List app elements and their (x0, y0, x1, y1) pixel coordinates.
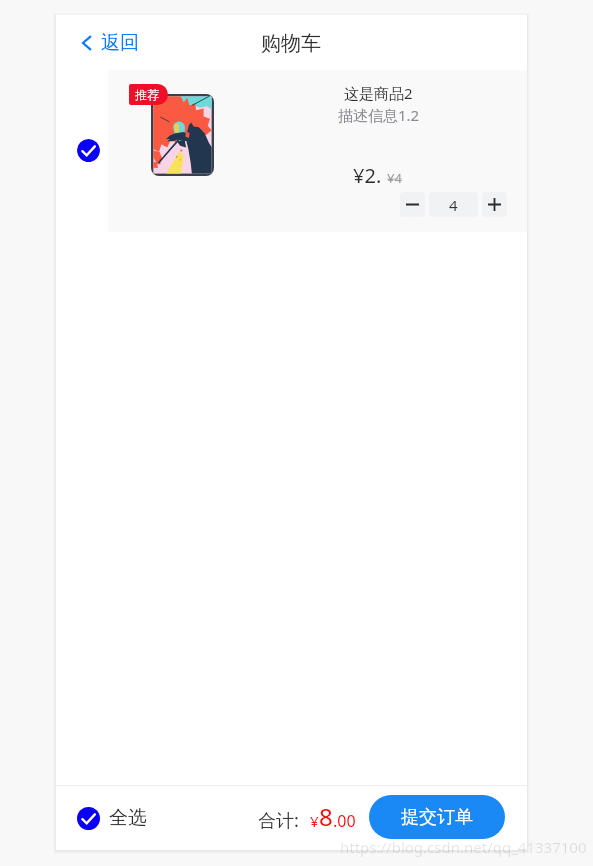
button[interactable]: Select item (77, 139, 100, 162)
staticText: 描述信息1.2 (338, 105, 420, 125)
staticText: 返回 (101, 31, 139, 55)
staticText: 8 (319, 800, 333, 833)
staticText: 推荐 (135, 87, 159, 102)
staticText: 4 (449, 195, 458, 215)
staticText: 合计: (258, 808, 299, 833)
button[interactable]: 返回 (81, 31, 139, 55)
staticText: 提交订单 (401, 806, 473, 829)
staticText: ¥ (310, 811, 319, 831)
button[interactable]: Decrease quantity (400, 192, 425, 217)
button[interactable]: 全选 (77, 806, 147, 830)
staticText: .00 (333, 810, 356, 832)
button[interactable]: 提交订单 (369, 795, 505, 839)
staticText: 购物车 (261, 31, 321, 56)
staticText: 全选 (109, 806, 147, 830)
staticText: https://blog.csdn.net/qq_41337100 (340, 837, 587, 857)
staticText: ¥4 (387, 169, 402, 187)
staticText: 这是商品2 (344, 83, 413, 103)
button[interactable]: Increase quantity (482, 192, 507, 217)
staticText: ¥2. (353, 162, 382, 189)
